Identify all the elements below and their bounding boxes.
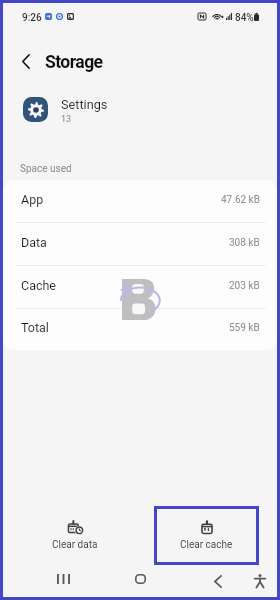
staticText: 13 — [61, 114, 72, 125]
staticText: Total — [21, 320, 49, 335]
button[interactable]: Home — [124, 568, 157, 590]
button[interactable]: Accessibility — [248, 570, 272, 592]
staticText: Data — [21, 235, 47, 250]
staticText: Clear cache — [180, 539, 233, 551]
button[interactable]: Clear cache — [154, 506, 259, 565]
staticText: 84% — [235, 12, 254, 24]
staticText: 559 kB — [229, 322, 260, 334]
staticText: App — [21, 192, 44, 207]
staticText: Settings — [61, 97, 108, 112]
button[interactable]: Navigate up — [15, 50, 37, 72]
button[interactable]: Data — [3, 223, 277, 266]
staticText: Cache — [21, 278, 56, 293]
staticText: Storage — [45, 52, 103, 73]
button[interactable]: Back — [201, 570, 234, 592]
button[interactable]: Clear data — [22, 506, 127, 565]
button[interactable]: App — [3, 180, 277, 223]
staticText: Clear data — [52, 539, 98, 551]
button[interactable]: Recent apps — [47, 568, 80, 590]
staticText: 9:26 — [22, 12, 42, 24]
staticText: 308 kB — [229, 237, 260, 249]
staticText: 203 kB — [229, 280, 260, 292]
button[interactable]: Cache — [3, 266, 277, 309]
staticText: 47.62 kB — [221, 194, 260, 206]
button[interactable]: Total — [3, 309, 277, 350]
staticText: Space used — [20, 163, 72, 175]
